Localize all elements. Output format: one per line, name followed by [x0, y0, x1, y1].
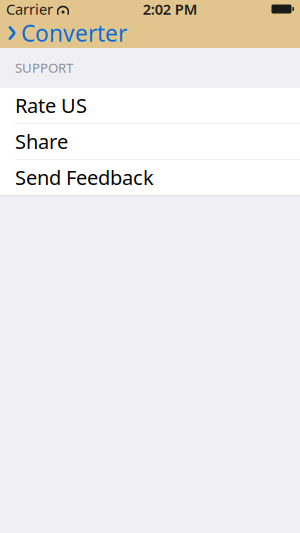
staticText: Converter: [21, 18, 127, 48]
button[interactable]: Send Feedback: [0, 159, 300, 195]
staticText: Share: [15, 128, 68, 155]
staticText: SUPPORT: [15, 59, 73, 76]
staticText: Rate US: [15, 92, 87, 119]
button[interactable]: Share: [0, 123, 300, 159]
button[interactable]: Converter: [0, 18, 137, 48]
staticText: Carrier: [6, 0, 53, 19]
staticText: 2:02 PM: [143, 0, 198, 19]
button[interactable]: Rate US: [0, 87, 300, 123]
staticText: Send Feedback: [15, 164, 154, 191]
